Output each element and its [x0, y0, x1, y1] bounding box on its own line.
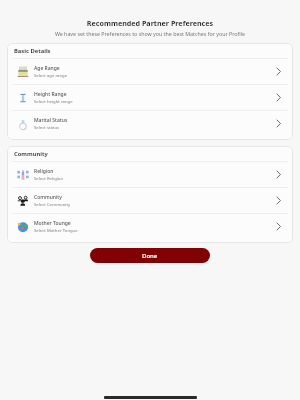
button[interactable]: Mother Tounge: [7, 214, 293, 239]
staticText: Height Range: [34, 91, 67, 98]
staticText: Select age range: [34, 72, 68, 78]
staticText: Select Religion: [34, 175, 64, 181]
staticText: Community: [34, 194, 62, 201]
other: Open: [274, 119, 283, 128]
staticText: Select Mother Tongue: [34, 227, 78, 233]
button[interactable]: Height Range: [7, 85, 293, 110]
staticText: Community: [14, 150, 48, 158]
staticText: Age Range: [34, 65, 60, 72]
staticText: Religion: [34, 168, 54, 175]
staticText: Done: [142, 252, 158, 260]
staticText: Select Community: [34, 201, 71, 207]
staticText: Basic Details: [14, 47, 51, 55]
staticText: Mother Tounge: [34, 220, 71, 227]
staticText: Select status: [34, 124, 60, 130]
staticText: Recommended Partner Preferences: [0, 18, 300, 28]
staticText: Marital Status: [34, 117, 68, 124]
other: Open: [274, 170, 283, 179]
other: Open: [274, 196, 283, 205]
button[interactable]: Age Range: [7, 59, 293, 84]
staticText: Select height range: [34, 98, 73, 104]
button[interactable]: Religion: [7, 162, 293, 187]
button[interactable]: Marital Status: [7, 111, 293, 136]
other: Open: [274, 67, 283, 76]
other: Open: [274, 222, 283, 231]
button[interactable]: Done: [90, 248, 210, 263]
staticText: We have set these Preferences to show yo…: [0, 30, 300, 37]
button[interactable]: Community: [7, 188, 293, 213]
other: Open: [274, 93, 283, 102]
